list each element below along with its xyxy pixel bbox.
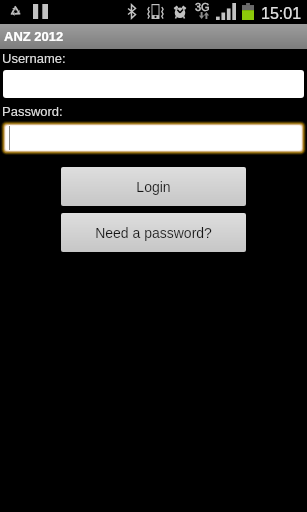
- staticText: ANZ 2012: [4, 29, 64, 44]
- staticText: Need a password?: [95, 225, 212, 241]
- staticText: Password:: [2, 104, 63, 119]
- button[interactable]: Login: [61, 167, 246, 206]
- staticText: Username:: [2, 51, 66, 66]
- button[interactable]: [0, 120, 307, 156]
- staticText: Login: [136, 179, 171, 195]
- button[interactable]: [3, 70, 304, 98]
- staticText: 15:01: [261, 5, 302, 23]
- button[interactable]: Need a password?: [61, 213, 246, 252]
- staticText: 3G: [195, 1, 210, 13]
